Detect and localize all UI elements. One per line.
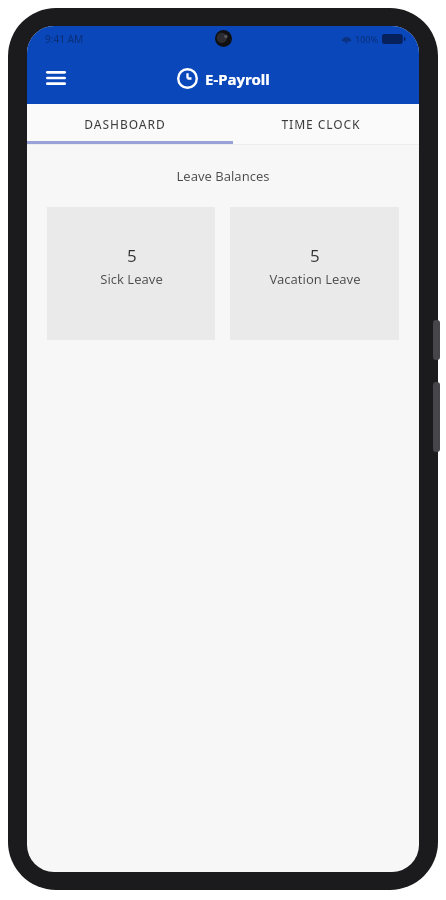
button[interactable]: Open navigation menu [39, 61, 73, 95]
button[interactable]: TIME CLOCK [223, 104, 419, 144]
staticText: DASHBOARD [84, 116, 166, 132]
button[interactable]: DASHBOARD [27, 104, 223, 144]
staticText: Leave Balances [27, 167, 419, 185]
staticText: E-Payroll [205, 69, 270, 89]
staticText: Sick Leave [100, 270, 163, 288]
staticText: TIME CLOCK [281, 116, 361, 132]
staticText: 5 [310, 244, 320, 267]
staticText: Vacation Leave [269, 270, 361, 288]
staticText: 9:41 AM [45, 32, 84, 46]
staticText: 100% [355, 33, 379, 45]
staticText: 5 [127, 244, 137, 267]
button[interactable]: 5 [230, 207, 399, 340]
button[interactable]: 5 [47, 207, 215, 340]
